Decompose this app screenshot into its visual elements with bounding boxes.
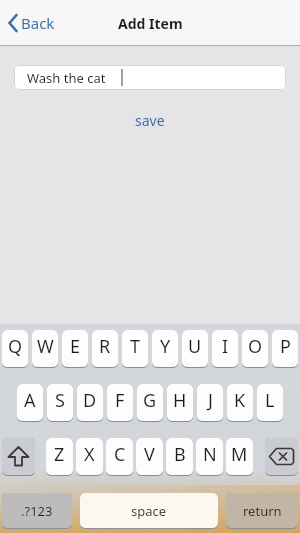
staticText: W — [37, 334, 54, 359]
button[interactable]: Q — [2, 330, 28, 367]
staticText: P — [280, 334, 291, 359]
button[interactable]: T — [122, 330, 148, 367]
button[interactable]: return — [226, 493, 298, 528]
button[interactable] — [265, 438, 298, 475]
staticText: Q — [8, 334, 23, 359]
staticText: F — [115, 388, 125, 413]
button[interactable]: H — [167, 384, 193, 421]
staticText: D — [83, 388, 97, 413]
staticText: Z — [54, 442, 65, 467]
button[interactable]: N — [196, 438, 223, 475]
staticText: B — [174, 442, 186, 467]
staticText: X — [84, 442, 95, 467]
staticText: K — [234, 388, 246, 413]
staticText: space — [131, 502, 167, 520]
button[interactable]: Y — [152, 330, 178, 367]
staticText: R — [99, 334, 111, 359]
button[interactable]: .?123 — [2, 493, 72, 528]
staticText: Y — [160, 334, 171, 359]
button[interactable]: space — [80, 493, 218, 528]
button[interactable]: R — [92, 330, 118, 367]
staticText: U — [188, 334, 202, 359]
staticText: H — [173, 388, 187, 413]
staticText: Add Item — [118, 14, 183, 33]
staticText: S — [55, 388, 65, 413]
button[interactable]: S — [47, 384, 73, 421]
staticText: G — [143, 388, 157, 413]
staticText: J — [208, 388, 213, 413]
staticText: return — [243, 502, 282, 520]
button[interactable]: Back — [8, 13, 55, 33]
button[interactable]: K — [227, 384, 253, 421]
button[interactable]: G — [137, 384, 163, 421]
button[interactable]: O — [242, 330, 268, 367]
staticText: Back — [21, 13, 55, 33]
button[interactable]: M — [226, 438, 253, 475]
staticText: save — [135, 111, 165, 130]
button[interactable]: A — [17, 384, 43, 421]
staticText: N — [203, 442, 217, 467]
button[interactable]: B — [166, 438, 193, 475]
staticText: V — [144, 442, 155, 467]
staticText: C — [114, 442, 126, 467]
staticText: E — [70, 334, 81, 359]
button[interactable]: X — [76, 438, 103, 475]
staticText: A — [24, 388, 36, 413]
button[interactable]: I — [212, 330, 238, 367]
button[interactable]: Wash the cat — [14, 65, 286, 90]
button[interactable]: C — [106, 438, 133, 475]
button[interactable]: J — [197, 384, 223, 421]
button[interactable]: Z — [46, 438, 73, 475]
button[interactable]: V — [136, 438, 163, 475]
button[interactable]: save — [127, 108, 173, 133]
button[interactable] — [2, 438, 35, 475]
button[interactable]: P — [272, 330, 298, 367]
button[interactable]: D — [77, 384, 103, 421]
button[interactable]: E — [62, 330, 88, 367]
staticText: M — [231, 442, 248, 467]
staticText: .?123 — [21, 502, 53, 520]
staticText: Wash the cat — [27, 69, 106, 87]
button[interactable]: F — [107, 384, 133, 421]
button[interactable]: L — [257, 384, 283, 421]
staticText: O — [248, 334, 263, 359]
staticText: T — [130, 334, 141, 359]
staticText: I — [222, 334, 229, 359]
button[interactable]: U — [182, 330, 208, 367]
button[interactable]: W — [32, 330, 58, 367]
staticText: L — [265, 388, 275, 413]
